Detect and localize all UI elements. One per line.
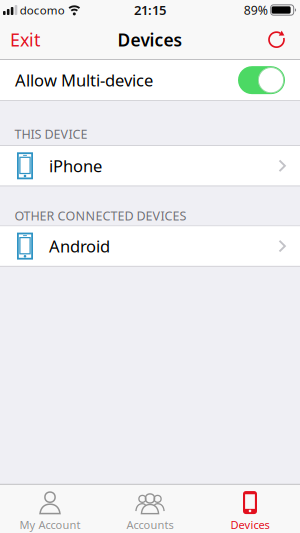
- staticText: docomo: [20, 2, 65, 18]
- button[interactable]: iPhone: [0, 146, 300, 186]
- staticText: 89%: [244, 2, 268, 18]
- staticText: OTHER CONNECTED DEVICES: [14, 207, 186, 224]
- staticText: Accounts: [126, 517, 173, 532]
- staticText: Android: [49, 235, 110, 257]
- staticText: Allow Multi-device: [15, 69, 153, 91]
- staticText: My Account: [19, 517, 80, 532]
- button[interactable]: Accounts: [100, 485, 200, 533]
- button[interactable]: Devices: [200, 485, 300, 533]
- button[interactable]: Allow Multi-device: [0, 60, 300, 100]
- staticText: Exit: [10, 27, 40, 52]
- button[interactable]: My Account: [0, 485, 100, 533]
- button[interactable]: Refresh: [267, 24, 300, 56]
- staticText: THIS DEVICE: [14, 125, 87, 142]
- staticText: Devices: [230, 517, 269, 532]
- staticText: 21:15: [134, 1, 166, 19]
- button[interactable]: Android: [0, 226, 300, 266]
- staticText: iPhone: [49, 154, 102, 177]
- staticText: Devices: [117, 28, 182, 51]
- button[interactable]: Exit: [0, 19, 40, 60]
